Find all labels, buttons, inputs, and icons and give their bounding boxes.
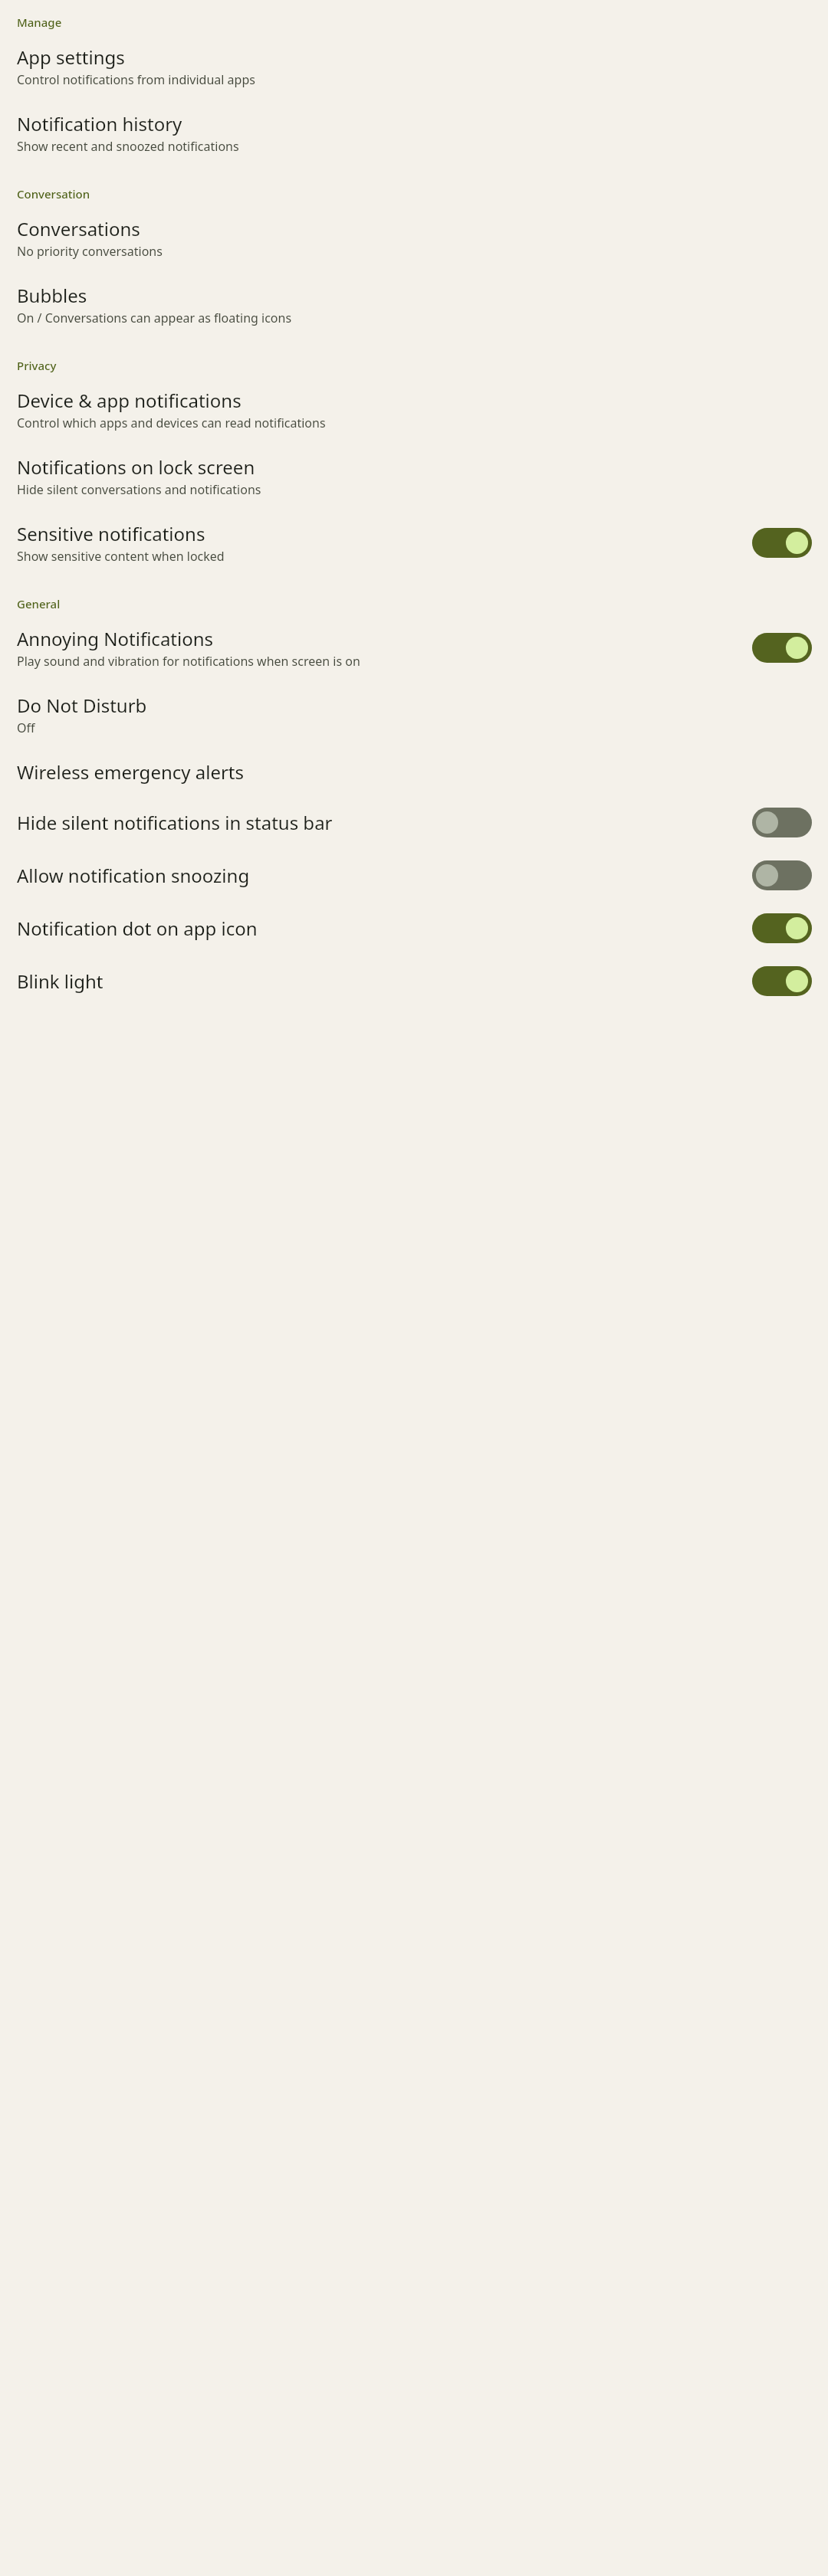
button[interactable]: Hide silent notifications in status bar (0, 796, 828, 849)
button[interactable]: Device & app notifications (0, 376, 828, 443)
button[interactable]: Bubbles (0, 271, 828, 338)
staticText: No priority conversations (17, 243, 163, 260)
button[interactable]: Annoying Notifications (0, 615, 828, 681)
button[interactable]: Blink light (752, 966, 812, 996)
staticText: Device & app notifications (17, 388, 242, 413)
staticText: Allow notification snoozing (17, 863, 250, 888)
button[interactable]: App settings (0, 33, 828, 100)
staticText: Notification history (17, 111, 182, 136)
staticText: Conversation (17, 186, 90, 202)
staticText: Show recent and snoozed notifications (17, 138, 239, 155)
button[interactable]: Allow notification snoozing (752, 860, 812, 890)
staticText: Hide silent notifications in status bar (17, 810, 333, 835)
button[interactable]: Blink light (0, 955, 828, 1008)
staticText: Control which apps and devices can read … (17, 415, 326, 431)
staticText: Show sensitive content when locked (17, 548, 225, 565)
staticText: Conversations (17, 216, 140, 241)
staticText: Privacy (17, 358, 57, 373)
staticText: Do Not Disturb (17, 693, 147, 718)
staticText: Blink light (17, 968, 103, 994)
staticText: Notifications on lock screen (17, 454, 255, 480)
button[interactable]: Sensitive notifications (0, 510, 828, 576)
button[interactable]: Notifications on lock screen (0, 443, 828, 510)
staticText: Hide silent conversations and notificati… (17, 481, 261, 498)
staticText: Bubbles (17, 283, 87, 308)
staticText: Control notifications from individual ap… (17, 71, 255, 88)
staticText: On / Conversations can appear as floatin… (17, 310, 292, 326)
button[interactable]: Sensitive notifications (752, 528, 812, 558)
staticText: Sensitive notifications (17, 521, 205, 546)
button[interactable]: Notification dot on app icon (752, 913, 812, 943)
button[interactable]: Notification history (0, 100, 828, 166)
button[interactable]: Allow notification snoozing (0, 849, 828, 902)
staticText: App settings (17, 44, 125, 70)
staticText: Annoying Notifications (17, 626, 214, 651)
button[interactable]: Wireless emergency alerts (0, 748, 828, 796)
button[interactable]: Annoying Notifications (752, 633, 812, 663)
button[interactable]: Hide silent notifications in status bar (752, 808, 812, 837)
staticText: Play sound and vibration for notificatio… (17, 653, 360, 670)
staticText: Manage (17, 15, 62, 30)
button[interactable]: Notification dot on app icon (0, 902, 828, 955)
staticText: Wireless emergency alerts (17, 759, 245, 785)
button[interactable]: Conversations (0, 205, 828, 271)
staticText: Off (17, 719, 35, 736)
staticText: General (17, 596, 61, 611)
staticText: Notification dot on app icon (17, 916, 258, 941)
button[interactable]: Do Not Disturb (0, 681, 828, 748)
